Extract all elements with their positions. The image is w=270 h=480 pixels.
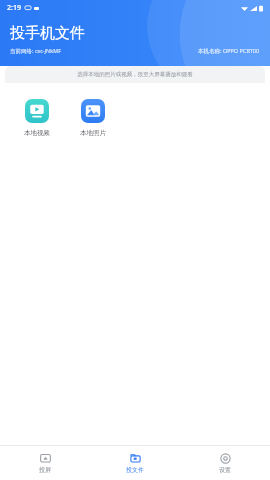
staticText: 当前网络: csc-JNkMF	[10, 47, 62, 55]
staticText: 本地照片	[80, 129, 106, 137]
button[interactable]: Local videos	[17, 99, 57, 137]
staticText: 选择本地的照片或视频，投至大屏幕播放和观看	[77, 71, 193, 78]
button[interactable]: Local photos	[73, 99, 113, 137]
staticText: 投文件	[126, 466, 144, 474]
button[interactable]: 设置	[180, 446, 270, 480]
staticText: 2:19	[7, 3, 21, 13]
staticText: 设置	[219, 466, 231, 474]
staticText: 本机名称: OPPO PCRT00	[198, 47, 260, 55]
staticText: 投手机文件	[10, 24, 85, 43]
button[interactable]: 投屏	[0, 446, 90, 480]
staticText: 投屏	[39, 466, 51, 474]
button[interactable]: 投文件	[90, 446, 180, 480]
staticText: 本地视频	[24, 129, 50, 137]
